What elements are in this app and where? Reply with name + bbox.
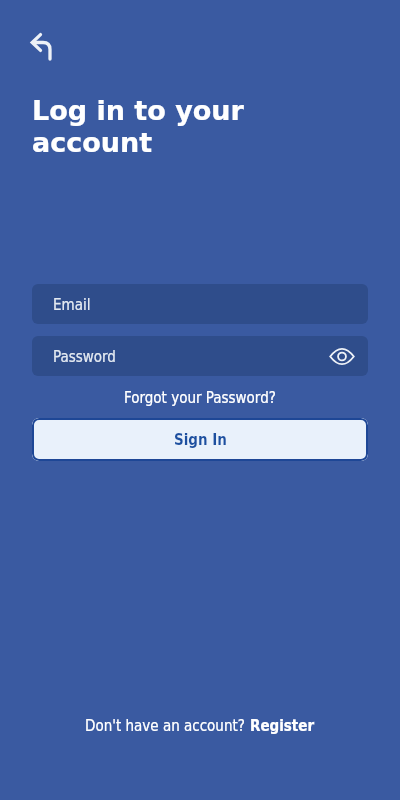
button[interactable]: Register: [250, 717, 315, 734]
button[interactable]: [320, 336, 368, 376]
button[interactable]: Password: [32, 336, 368, 376]
staticText: Forgot your Password?: [124, 389, 276, 406]
button[interactable]: Email: [32, 284, 368, 324]
staticText: Don't have an account?: [85, 717, 250, 734]
button[interactable]: [16, 18, 64, 66]
staticText: account: [32, 127, 153, 158]
staticText: Register: [250, 717, 315, 734]
staticText: Password: [53, 348, 116, 365]
button[interactable]: Sign In: [32, 418, 368, 461]
staticText: Log in to your: [32, 95, 244, 126]
staticText: Sign In: [174, 431, 227, 448]
button[interactable]: Forgot your Password?: [124, 389, 276, 406]
staticText: Email: [53, 296, 91, 313]
